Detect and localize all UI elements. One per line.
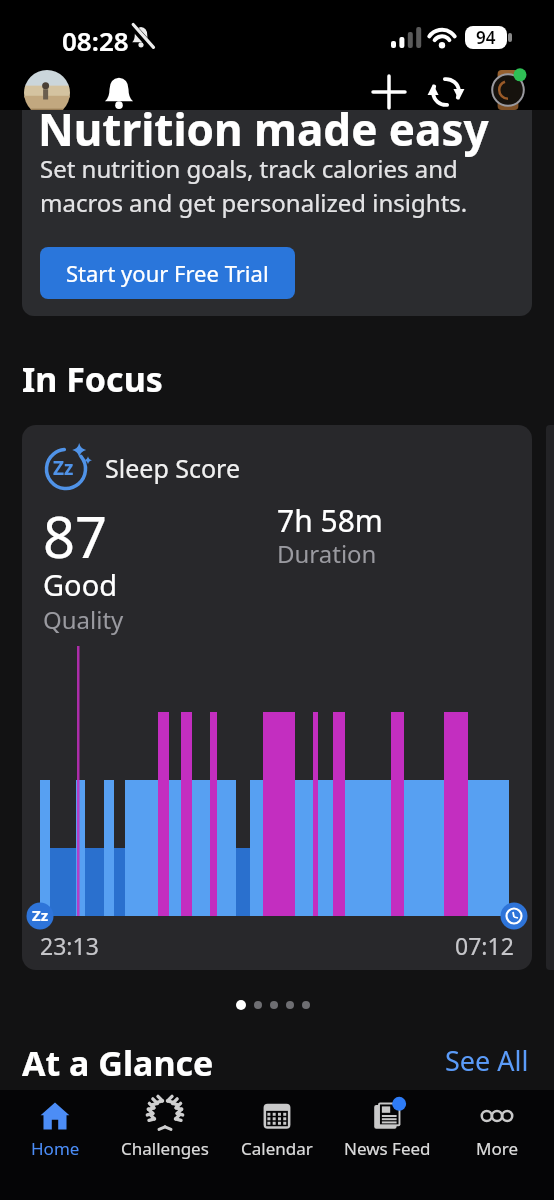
button[interactable] (286, 1001, 294, 1009)
button[interactable] (236, 1000, 246, 1010)
staticText: Good (43, 565, 118, 604)
staticText: Home (31, 1137, 80, 1160)
staticText: Sleep Score (105, 451, 241, 485)
staticText: Zz (53, 455, 74, 481)
button[interactable] (371, 74, 407, 110)
staticText: Quality (43, 603, 124, 636)
staticText: macros and get personalized insights. (40, 186, 468, 219)
staticText: More (476, 1137, 518, 1160)
staticText: Challenges (121, 1137, 209, 1160)
button[interactable] (428, 74, 464, 110)
staticText: At a Glance (22, 1040, 214, 1086)
staticText: 07:12 (455, 930, 514, 961)
staticText: Start your Free Trial (66, 258, 269, 288)
button[interactable]: Challenges (110, 1100, 220, 1164)
button[interactable]: See All (445, 1042, 533, 1078)
button[interactable]: News Feed (332, 1100, 442, 1164)
staticText: 87 (43, 498, 108, 574)
staticText: 7h 58m (277, 500, 383, 541)
button[interactable]: More (442, 1100, 552, 1164)
staticText: Nutrition made easy (38, 110, 489, 159)
button[interactable] (254, 1001, 262, 1009)
button[interactable]: Start your Free Trial (40, 247, 295, 299)
button[interactable] (302, 1001, 310, 1009)
staticText: 23:13 (40, 930, 99, 961)
staticText: See All (445, 1042, 529, 1078)
staticText: Duration (277, 537, 377, 570)
button[interactable] (100, 74, 138, 112)
button[interactable] (24, 70, 70, 116)
staticText: News Feed (344, 1137, 431, 1160)
button[interactable] (488, 70, 528, 110)
button[interactable]: Zz (22, 425, 532, 970)
staticText: Calendar (241, 1137, 313, 1160)
staticText: In Focus (22, 356, 163, 402)
button[interactable] (270, 1001, 278, 1009)
button[interactable]: Home (0, 1100, 110, 1164)
staticText: Zz (32, 905, 49, 925)
staticText: 94 (476, 26, 496, 49)
button[interactable]: Nutrition made easy (22, 110, 532, 316)
staticText: 08:28 (62, 23, 129, 58)
button[interactable]: Calendar (222, 1100, 332, 1164)
staticText: Set nutrition goals, track calories and (40, 152, 458, 185)
